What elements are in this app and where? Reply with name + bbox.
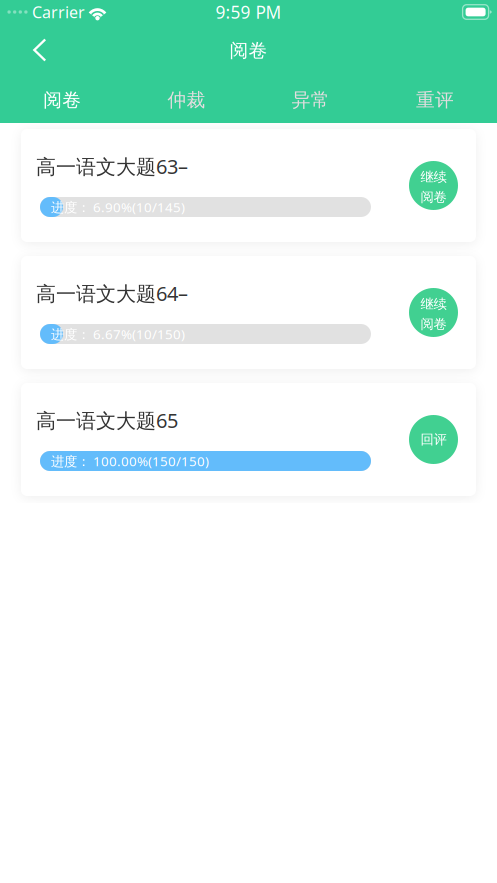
button[interactable]: 继续	[409, 161, 476, 210]
staticText: 继续	[420, 169, 446, 185]
staticText: 重评	[416, 88, 454, 111]
button[interactable]: Back	[0, 29, 62, 69]
staticText: 仲裁	[167, 88, 205, 111]
staticText: 继续	[420, 296, 446, 312]
staticText: 9:59 PM	[215, 0, 281, 23]
button[interactable]: 继续	[409, 288, 476, 337]
staticText: 回评	[420, 431, 446, 448]
staticText: 阅卷	[43, 88, 81, 111]
staticText: 进度： 6.90%(10/145)	[51, 198, 185, 216]
staticText: 异常	[292, 88, 330, 111]
button[interactable]: 回评	[409, 415, 476, 464]
staticText: 高一语文大题65	[36, 407, 178, 434]
button[interactable]: 异常	[248, 74, 373, 123]
staticText: 高一语文大题63–	[36, 153, 188, 180]
staticText: 高一语文大题64–	[36, 280, 188, 307]
button[interactable]: 阅卷	[0, 74, 124, 123]
staticText: 阅卷	[420, 316, 446, 332]
staticText: 阅卷	[229, 39, 267, 62]
staticText: 阅卷	[420, 189, 446, 205]
staticText: 进度： 6.67%(10/150)	[51, 325, 185, 343]
staticText: 进度： 100.00%(150/150)	[51, 452, 209, 470]
button[interactable]: 仲裁	[124, 74, 248, 123]
staticText: Carrier	[32, 1, 85, 23]
button[interactable]: 重评	[373, 74, 497, 123]
